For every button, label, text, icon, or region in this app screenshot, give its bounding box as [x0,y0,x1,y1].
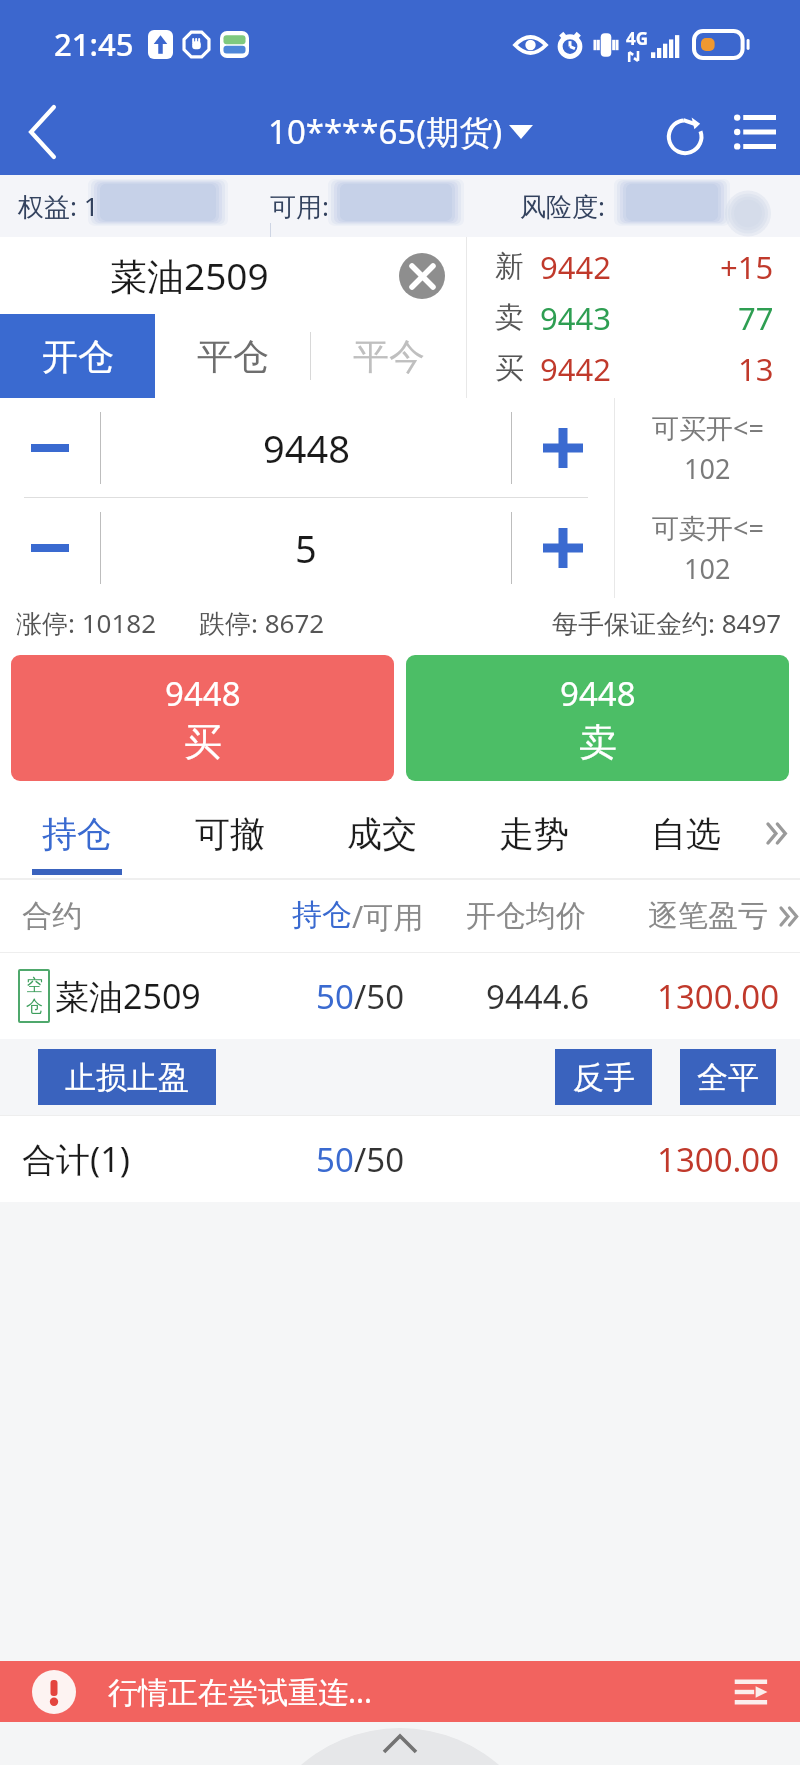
staticText: 可卖开<= [652,509,764,546]
staticText: 全平 [697,1058,759,1097]
staticText: 每手保证金约: 8497 [552,605,782,641]
staticText: 风险度: [520,188,612,224]
staticText: 可撤 [195,812,265,856]
staticText: /50 [354,974,405,1019]
button[interactable]: 10****65(期货) [268,109,533,154]
staticText: 开仓 [42,334,114,379]
staticText: 合约 [22,897,82,935]
staticText: 50 [316,1137,354,1182]
staticText: 9448 [263,422,350,474]
button[interactable]: More tabs [754,787,800,880]
staticText: 9448 [165,671,241,716]
staticText: 5 [295,522,317,574]
button[interactable]: Increase [512,498,614,598]
staticText: 持仓 [292,896,352,934]
staticText: 102 [684,550,731,587]
staticText: 1300.00 [657,1137,780,1182]
staticText: 菜油2509 [110,250,269,301]
button[interactable]: 平仓 [155,314,310,398]
staticText: 可买开<= [652,409,764,446]
button[interactable]: Menu [710,88,800,175]
button[interactable]: 自选 [610,787,762,880]
staticText: 10****65(期货) [268,109,503,154]
button[interactable]: 行情正在尝试重连... [0,1661,800,1722]
staticText: 平仓 [197,334,269,379]
staticText: 持仓 [42,812,112,856]
staticText: 涨停: 10182 [16,605,157,641]
staticText: 买 [495,350,524,387]
staticText: 逐笔盈亏 [648,897,768,935]
staticText: 9448 [560,671,636,716]
staticText: 权益: 1 [18,188,99,224]
staticText: 21:45 [54,23,134,65]
staticText: 合计(1) [22,1136,130,1182]
button[interactable]: 成交 [306,787,458,880]
button[interactable]: 全平 [680,1049,776,1105]
staticText: 走势 [499,812,569,856]
staticText: 可用: [270,188,336,224]
staticText: 新 [495,248,524,285]
staticText: +15 [720,246,774,288]
staticText: 50 [316,974,354,1019]
button[interactable]: Log [734,1676,770,1708]
staticText: 跌停: 8672 [199,605,325,641]
staticText: /50 [354,1137,405,1182]
button[interactable]: 止损止盈 [38,1049,216,1105]
button[interactable]: Back [0,88,86,175]
staticText: 4G [626,27,649,50]
button[interactable]: Clear [399,253,445,299]
staticText: 开仓均价 [466,897,586,935]
staticText: 13 [738,348,774,390]
staticText: 空 [26,975,43,996]
button[interactable]: 9448 [406,655,789,781]
staticText: 菜油2509 [55,973,201,1019]
staticText: 买 [184,718,222,766]
button[interactable]: 走势 [458,787,610,880]
staticText: 行情正在尝试重连... [108,1671,373,1712]
staticText: 止损止盈 [65,1058,189,1097]
staticText: 自选 [651,812,721,856]
staticText: 卖 [579,718,617,766]
staticText: 仓 [26,996,43,1017]
button[interactable]: 平今 [311,314,466,398]
button[interactable]: Decrease [0,398,100,497]
staticText: 9442 [540,348,611,390]
staticText: 9443 [540,297,611,339]
staticText: 102 [684,450,731,487]
button[interactable]: Decrease [0,498,100,598]
staticText: 卖 [495,299,524,336]
button[interactable]: Expand [0,1722,800,1765]
button[interactable]: 开仓 [0,314,155,398]
staticText: 77 [738,297,774,339]
button[interactable]: 空 [0,953,800,1039]
staticText: 成交 [347,812,417,856]
staticText: 9444.6 [486,974,590,1019]
staticText: 1300.00 [657,974,780,1019]
button[interactable]: Increase [512,398,614,497]
staticText: 9442 [540,246,611,288]
staticText: 反手 [573,1058,635,1097]
button[interactable]: 持仓 [0,787,153,880]
button[interactable]: 反手 [555,1049,652,1105]
button[interactable]: Refresh [624,88,710,175]
button[interactable]: 9448 [11,655,394,781]
staticText: 平今 [353,334,425,379]
staticText: /可用 [352,896,424,937]
button[interactable]: 可撤 [153,787,306,880]
